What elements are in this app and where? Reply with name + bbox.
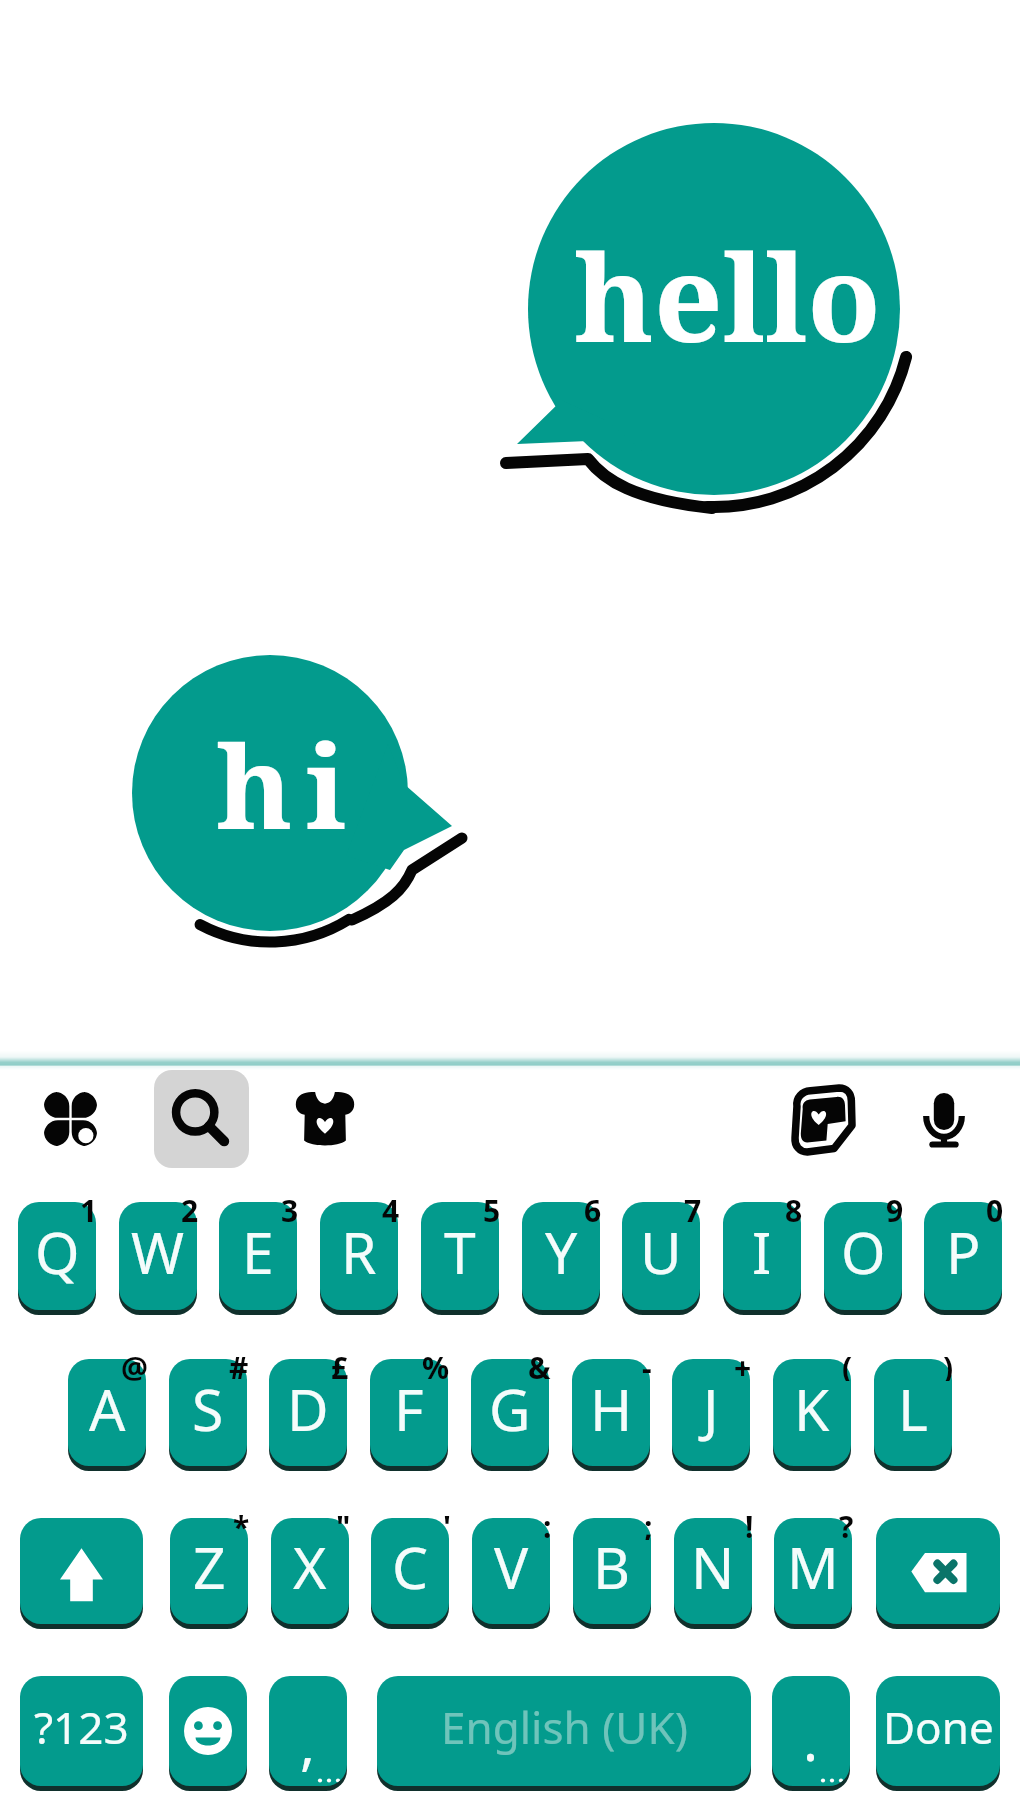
button[interactable]: V [472,1518,550,1624]
staticText: X [293,1528,327,1606]
staticText: I [752,1213,772,1291]
button[interactable]: P [924,1202,1002,1310]
staticText: 6 [584,1190,602,1224]
staticText: 3 [281,1190,299,1224]
staticText: Q [35,1213,80,1291]
staticText: K [794,1370,830,1448]
staticText: B [593,1528,631,1606]
staticText: ' [443,1506,451,1540]
staticText: F [394,1370,424,1448]
button[interactable]: Themes [44,1092,97,1146]
button[interactable]: ?123 [20,1676,143,1786]
button[interactable]: L [874,1359,952,1466]
staticText: Y [545,1213,578,1291]
staticText: V [494,1528,529,1606]
staticText: Z [193,1528,226,1606]
staticText: R [341,1213,377,1291]
staticText: # [229,1347,249,1381]
staticText: H [590,1370,633,1448]
staticText: % [422,1347,450,1381]
staticText: 5 [483,1190,501,1224]
staticText: English (UK) [441,1697,688,1757]
staticText: : [543,1506,552,1540]
button[interactable]: C [371,1518,449,1624]
staticText: D [287,1370,329,1448]
staticText: ?123 [34,1697,129,1757]
staticText: N [691,1528,735,1606]
button[interactable]: Z [170,1518,248,1624]
button[interactable]: J [672,1359,750,1466]
staticText: £ [331,1347,349,1381]
button[interactable]: Done [876,1676,1000,1786]
button[interactable]: A [68,1359,146,1466]
staticText: 9 [886,1190,904,1224]
staticText: 2 [181,1190,199,1224]
button[interactable]: M [774,1518,852,1624]
button[interactable]: H [572,1359,650,1466]
staticText: 0 [986,1190,1004,1224]
button[interactable]: . [772,1676,850,1786]
staticText: , [300,1705,316,1781]
button[interactable]: Search [172,1088,230,1146]
staticText: O [841,1213,886,1291]
button[interactable]: F [370,1359,448,1466]
staticText: hello [574,214,881,377]
button[interactable]: I [723,1202,801,1310]
staticText: 7 [684,1190,702,1224]
button[interactable]: Y [522,1202,600,1310]
button[interactable]: Backspace [876,1518,1000,1624]
staticText: G [489,1370,531,1448]
button[interactable]: Emoji [169,1676,247,1786]
staticText: ) [943,1347,954,1381]
staticText: C [392,1528,429,1606]
button[interactable]: Sticker [788,1086,852,1154]
button[interactable]: K [773,1359,851,1466]
staticText: " [336,1506,351,1540]
button[interactable]: Voice input [924,1091,964,1147]
staticText: @ [121,1347,148,1381]
button[interactable]: Q [18,1202,96,1310]
staticText: & [528,1347,551,1381]
button[interactable]: English (UK) [377,1676,751,1786]
staticText: ! [745,1506,754,1540]
staticText: P [946,1213,981,1291]
staticText: . [803,1701,819,1777]
button[interactable]: Stickers [296,1091,354,1146]
button[interactable]: T [421,1202,499,1310]
button[interactable]: W [119,1202,197,1310]
staticText: + [734,1347,752,1381]
staticText: U [640,1213,682,1291]
staticText: ; [644,1506,653,1540]
staticText: T [444,1213,476,1291]
staticText: 4 [382,1190,400,1224]
button[interactable]: O [824,1202,902,1310]
button[interactable]: S [169,1359,247,1466]
button[interactable]: Shift [20,1518,143,1624]
button[interactable]: N [674,1518,752,1624]
staticText: A [89,1370,126,1448]
staticText: Done [883,1697,994,1757]
staticText: E [242,1213,274,1291]
staticText: - [642,1347,652,1381]
button[interactable]: , [269,1676,347,1786]
button[interactable]: B [573,1518,651,1624]
staticText: ? [839,1506,854,1540]
staticText: M [787,1528,839,1606]
staticText: 8 [785,1190,803,1224]
staticText: ( [842,1347,853,1381]
button[interactable]: X [271,1518,349,1624]
staticText: J [703,1370,719,1448]
staticText: S [192,1370,224,1448]
button[interactable]: R [320,1202,398,1310]
staticText: 1 [80,1190,98,1224]
button[interactable]: U [622,1202,700,1310]
staticText: L [898,1370,928,1448]
staticText: * [233,1506,250,1540]
button[interactable]: D [269,1359,347,1466]
staticText: hi [216,706,360,863]
button[interactable]: E [219,1202,297,1310]
button[interactable]: G [471,1359,549,1466]
staticText: W [131,1213,185,1291]
